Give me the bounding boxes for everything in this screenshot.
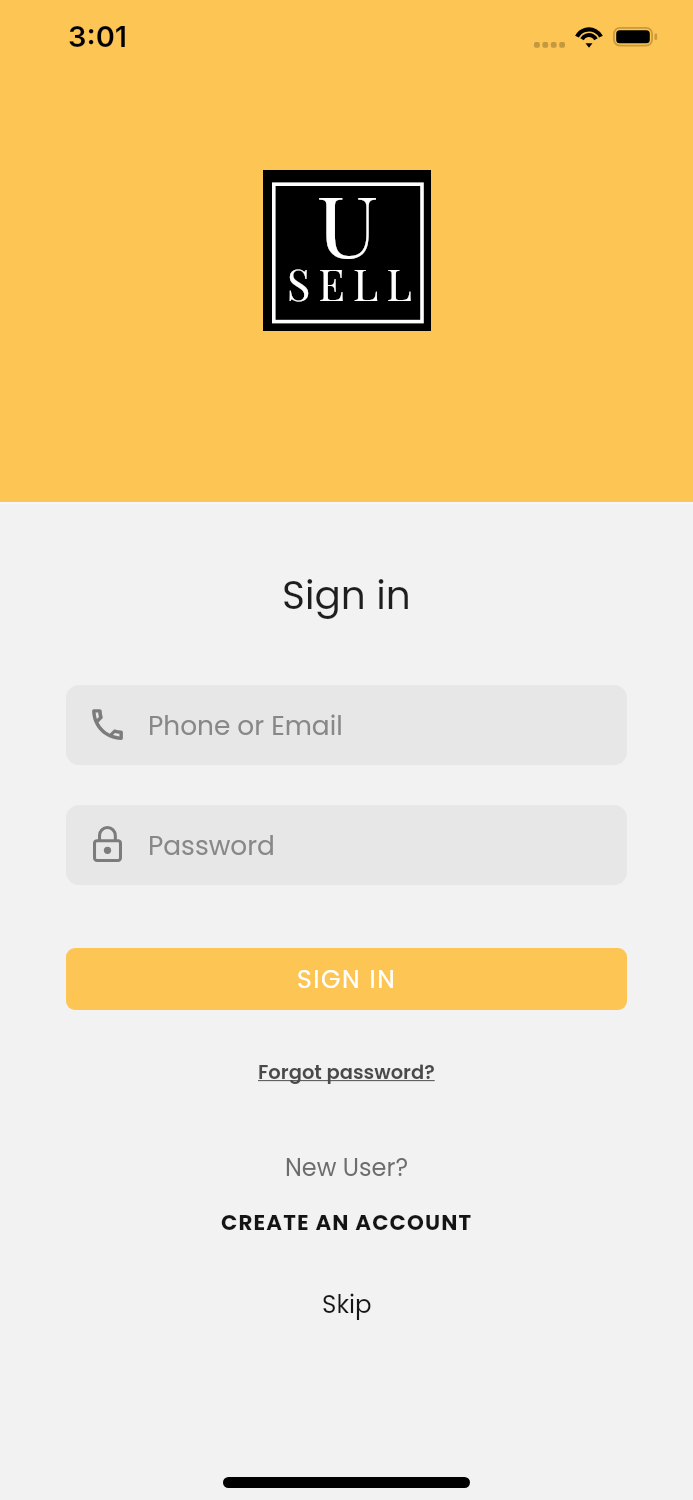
staticText: U [317,167,379,279]
other: Phone or email [87,704,128,745]
staticText: 3:01 [68,19,128,54]
staticText: SELL [287,254,421,311]
button[interactable]: Phone or email [66,685,627,765]
other: Password [93,826,122,862]
staticText: Skip [322,1287,372,1321]
staticText: CREATE AN ACCOUNT [221,1208,473,1238]
staticText: Forgot password? [258,1059,435,1086]
staticText: Sign in [282,568,411,623]
button[interactable]: SIGN IN [66,948,627,1010]
button[interactable]: Forgot password? [248,1053,445,1092]
staticText: New User? [285,1151,408,1185]
button[interactable]: Skip [310,1281,384,1327]
button[interactable]: Password [66,805,627,885]
staticText: Phone or Email [148,707,343,744]
other: U SELL logo [263,170,431,331]
staticText: Password [148,827,275,864]
button[interactable]: CREATE AN ACCOUNT [211,1202,483,1244]
staticText: SIGN IN [297,962,397,997]
